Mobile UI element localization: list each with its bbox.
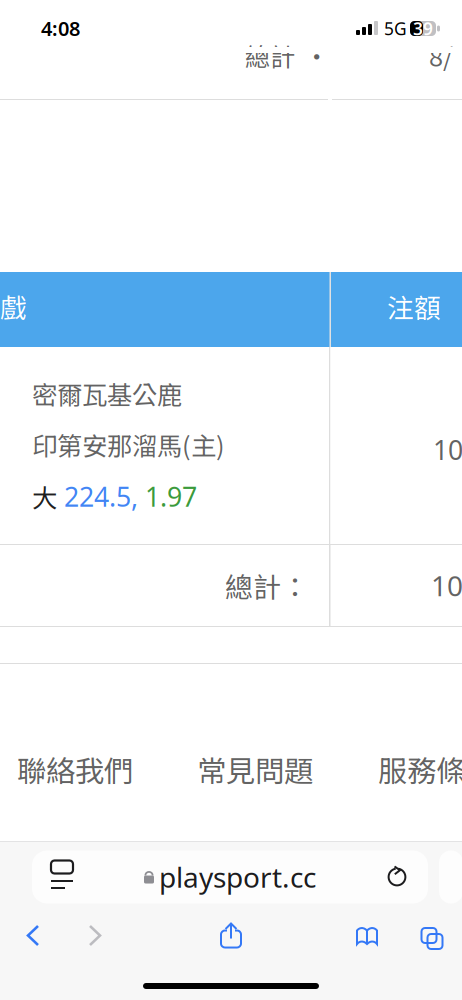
staticText: 服務條款 xyxy=(378,748,462,790)
button[interactable]: 聯絡我們 xyxy=(17,748,133,790)
staticText: 10 xyxy=(431,567,462,604)
button[interactable]: Bookmarks xyxy=(336,915,398,955)
button[interactable]: 服務條款 xyxy=(378,748,462,790)
staticText: 4:08 xyxy=(41,15,80,42)
button[interactable]: 常見問題 xyxy=(197,748,313,790)
staticText: 總計： xyxy=(225,565,309,606)
staticText: 224.5, xyxy=(57,479,138,514)
staticText: 1.97 xyxy=(138,479,197,514)
button[interactable]: Forward xyxy=(64,915,126,955)
staticText: 5G xyxy=(384,17,407,40)
staticText: 密爾瓦基公鹿 xyxy=(32,375,182,412)
staticText: 印第安那溜馬(主) xyxy=(32,426,225,463)
button[interactable]: playsport.cc xyxy=(32,850,428,903)
staticText: 總計 xyxy=(245,37,295,74)
button[interactable]: Share xyxy=(200,915,262,955)
staticText: playsport.cc xyxy=(159,858,316,896)
staticText: 大 xyxy=(32,478,57,515)
staticText: · xyxy=(304,37,329,74)
staticText: 注額 xyxy=(387,287,441,326)
staticText: 聯絡我們 xyxy=(17,748,133,790)
staticText: 39 xyxy=(413,17,433,40)
staticText: 10 xyxy=(433,432,462,467)
staticText: 8/ xyxy=(429,37,453,74)
staticText: 常見問題 xyxy=(197,748,313,790)
button[interactable]: Tabs xyxy=(398,915,460,955)
button[interactable]: Back xyxy=(2,915,64,955)
staticText: 戲 xyxy=(0,287,27,326)
